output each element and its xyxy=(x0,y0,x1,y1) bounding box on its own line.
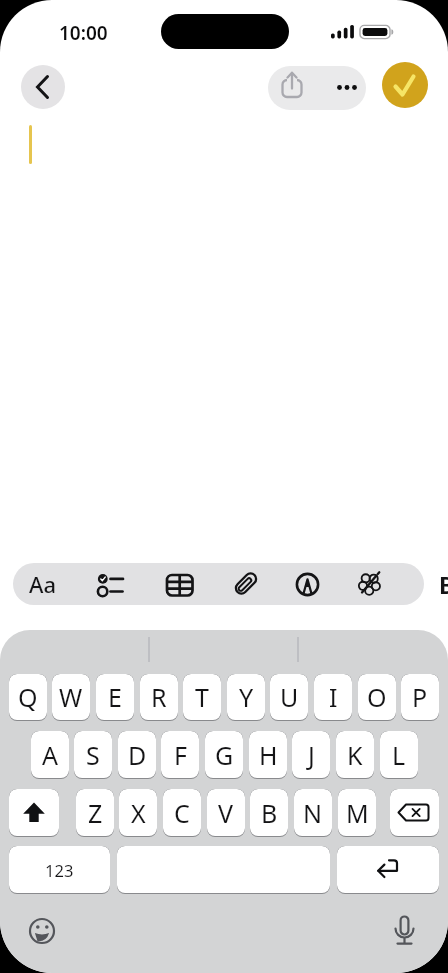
button[interactable]: T xyxy=(183,674,221,720)
staticText: T xyxy=(195,680,209,714)
button[interactable]: R xyxy=(140,674,178,720)
staticText: 10:00 xyxy=(59,20,108,46)
staticText: N xyxy=(303,796,323,830)
button[interactable] xyxy=(289,566,326,603)
staticText: H xyxy=(259,738,278,772)
staticText: V xyxy=(218,796,234,830)
button[interactable]: E xyxy=(96,674,134,720)
button[interactable] xyxy=(9,789,59,836)
staticText: R xyxy=(151,680,167,714)
button[interactable]: G xyxy=(205,731,243,778)
button[interactable]: W xyxy=(52,674,90,720)
staticText: I xyxy=(329,680,338,714)
button[interactable]: O xyxy=(358,674,396,720)
staticText: K xyxy=(347,738,363,772)
staticText: Aa xyxy=(29,569,56,599)
button[interactable] xyxy=(382,62,428,108)
button[interactable] xyxy=(390,913,419,947)
button[interactable] xyxy=(21,65,65,109)
staticText: U xyxy=(280,680,299,714)
staticText: G xyxy=(215,738,234,772)
button[interactable]: Aa xyxy=(20,566,65,602)
staticText: A xyxy=(42,738,58,772)
button[interactable]: D xyxy=(118,731,156,778)
staticText: Z xyxy=(88,796,103,830)
staticText: S xyxy=(86,738,100,772)
button[interactable] xyxy=(390,789,439,836)
button[interactable]: P xyxy=(401,674,439,720)
button[interactable] xyxy=(92,566,130,602)
button[interactable]: C xyxy=(163,789,201,836)
staticText: P xyxy=(412,680,428,714)
button[interactable]: U xyxy=(270,674,308,720)
button[interactable]: I xyxy=(314,674,352,720)
button[interactable]: V xyxy=(207,789,245,836)
staticText: O xyxy=(367,680,387,714)
button[interactable] xyxy=(317,66,366,110)
staticText: B xyxy=(439,569,448,600)
staticText: M xyxy=(346,796,369,830)
button[interactable]: M xyxy=(338,789,376,836)
button[interactable]: J xyxy=(292,731,330,778)
button[interactable]: F xyxy=(161,731,199,778)
button[interactable]: N xyxy=(294,789,332,836)
button[interactable]: Y xyxy=(227,674,265,720)
button[interactable]: X xyxy=(119,789,157,836)
staticText: F xyxy=(174,738,187,772)
button[interactable] xyxy=(28,916,56,944)
button[interactable]: S xyxy=(74,731,112,778)
staticText: J xyxy=(308,738,315,772)
staticText: W xyxy=(59,680,83,714)
staticText: E xyxy=(108,680,122,714)
button[interactable]: Q xyxy=(9,674,47,720)
staticText: C xyxy=(174,796,190,830)
staticText: Q xyxy=(18,680,38,714)
button[interactable] xyxy=(117,846,330,893)
button[interactable]: B xyxy=(250,789,288,836)
button[interactable]: A xyxy=(31,731,69,778)
staticText: B xyxy=(261,796,278,830)
button[interactable]: L xyxy=(380,731,418,778)
button[interactable]: K xyxy=(336,731,374,778)
button[interactable]: 123 xyxy=(9,846,110,893)
button[interactable]: H xyxy=(249,731,287,778)
button[interactable] xyxy=(162,566,198,602)
button[interactable] xyxy=(268,66,317,110)
staticText: L xyxy=(392,738,406,772)
button[interactable] xyxy=(228,566,264,602)
staticText: Y xyxy=(239,680,254,714)
button[interactable] xyxy=(337,846,439,893)
staticText: D xyxy=(128,738,147,772)
staticText: X xyxy=(131,796,146,830)
button[interactable]: Z xyxy=(76,789,114,836)
staticText: 123 xyxy=(45,859,74,881)
button[interactable] xyxy=(352,566,389,602)
